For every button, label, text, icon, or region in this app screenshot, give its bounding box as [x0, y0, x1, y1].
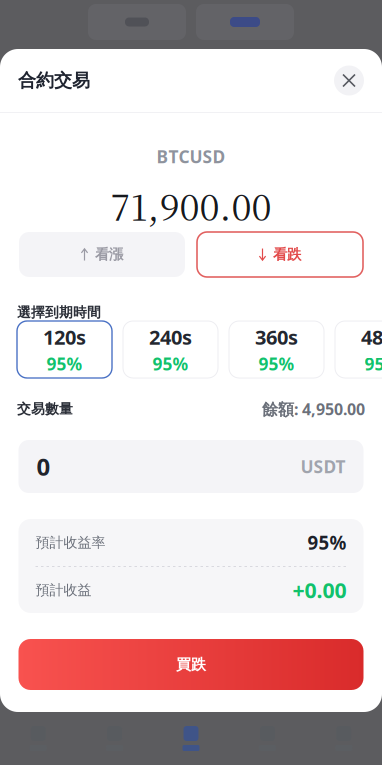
button[interactable]: 買跌 [18, 639, 363, 690]
staticText: 買跌 [176, 655, 206, 674]
staticText: 71,900.00 [110, 179, 271, 231]
button[interactable]: 480s [335, 321, 382, 378]
staticText: 120s [43, 324, 86, 350]
button[interactable]: 240s [123, 321, 218, 378]
staticText: 合約交易 [18, 69, 90, 92]
staticText: 0 [36, 451, 50, 482]
staticText: BTCUSD [156, 145, 225, 168]
staticText: 交易數量 [17, 400, 73, 418]
staticText: 預計收益 [35, 581, 91, 599]
staticText: 95% [258, 352, 294, 375]
staticText: USDT [300, 455, 345, 478]
staticText: 240s [149, 324, 192, 350]
button[interactable]: 120s [17, 321, 112, 378]
staticText: 看跌 [273, 245, 301, 263]
button[interactable]: Close [334, 65, 364, 95]
staticText: 看漲 [95, 245, 123, 263]
staticText: 選擇到期時間 [17, 304, 101, 321]
staticText: 95% [46, 352, 82, 375]
button[interactable]: 360s [229, 321, 324, 378]
staticText: 480s [361, 324, 382, 350]
staticText: 95% [307, 530, 346, 555]
staticText: +0.00 [292, 576, 346, 604]
staticText: 預計收益率 [35, 534, 105, 551]
staticText: 360s [255, 324, 298, 350]
staticText: 95% [364, 352, 382, 375]
button[interactable]: 看跌 [197, 232, 363, 277]
staticText: 95% [152, 352, 188, 375]
staticText: 餘額: 4,950.00 [262, 398, 365, 420]
button[interactable]: 看漲 [19, 232, 185, 277]
